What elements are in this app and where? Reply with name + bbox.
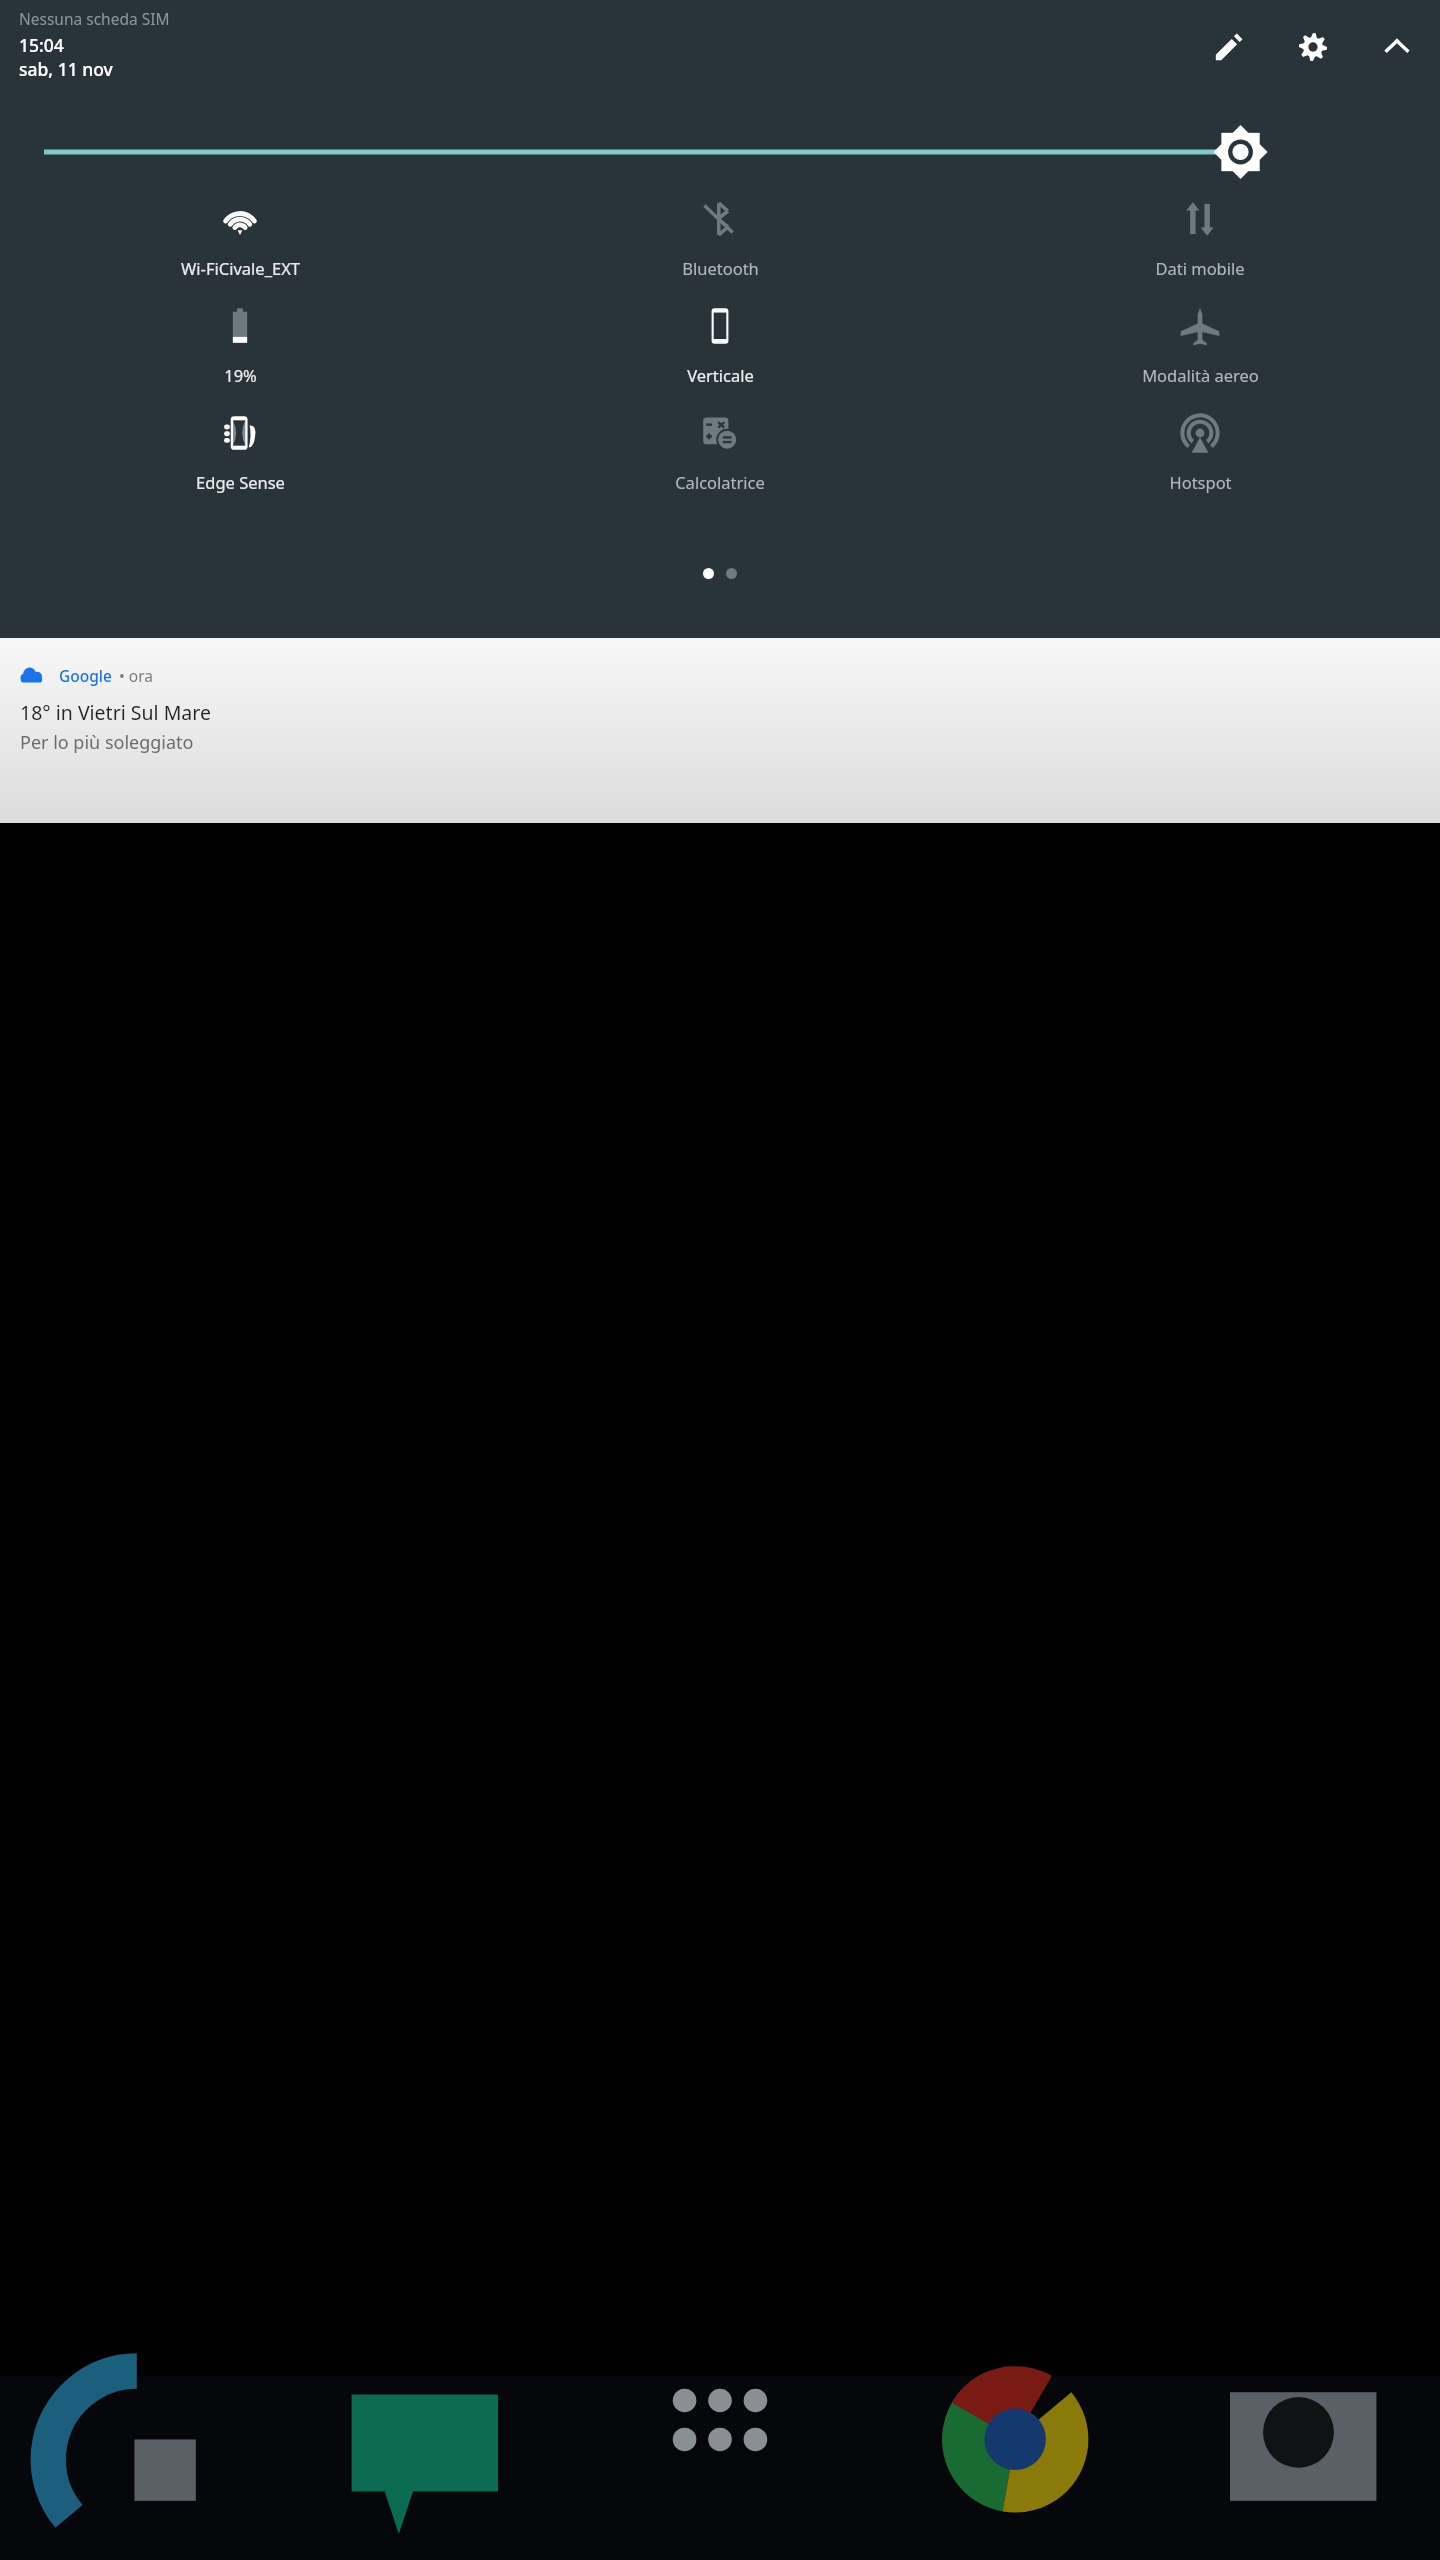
staticText: Hotspot xyxy=(1169,471,1232,493)
staticText: Calcolatrice xyxy=(675,471,765,493)
staticText: Wi-FiCivale_EXT xyxy=(181,257,300,279)
button[interactable]: Verticale xyxy=(480,305,960,386)
staticText: Verticale xyxy=(687,364,754,386)
staticText: Edge Sense xyxy=(196,471,285,493)
staticText: • ora xyxy=(119,665,154,686)
button[interactable]: Edit xyxy=(1202,20,1256,74)
staticText: Modalità aereo xyxy=(1142,364,1259,386)
staticText: Dati mobile xyxy=(1155,257,1245,279)
button[interactable]: Hotspot xyxy=(960,412,1440,493)
button[interactable]: Google xyxy=(0,638,1440,823)
staticText: Bluetooth xyxy=(682,257,759,279)
button[interactable]: Calcolatrice xyxy=(480,412,960,493)
button[interactable]: Settings xyxy=(1286,20,1340,74)
staticText: 15:04 xyxy=(19,33,64,57)
staticText: Nessuna scheda SIM xyxy=(19,8,170,29)
button[interactable]: Wi-FiCivale_EXT xyxy=(0,198,480,279)
staticText: sab, 11 nov xyxy=(19,57,113,81)
button[interactable]: Edge Sense xyxy=(0,412,480,493)
button[interactable]: Bluetooth xyxy=(480,198,960,279)
button[interactable] xyxy=(0,122,1440,182)
button[interactable]: 19% xyxy=(0,305,480,386)
staticText: 19% xyxy=(224,364,257,386)
button[interactable]: Collapse xyxy=(1370,20,1424,74)
button[interactable]: Dati mobile xyxy=(960,198,1440,279)
staticText: Per lo più soleggiato xyxy=(20,730,194,755)
staticText: Google xyxy=(59,665,112,686)
button[interactable]: Modalità aereo xyxy=(960,305,1440,386)
staticText: 18° in Vietri Sul Mare xyxy=(20,699,211,726)
